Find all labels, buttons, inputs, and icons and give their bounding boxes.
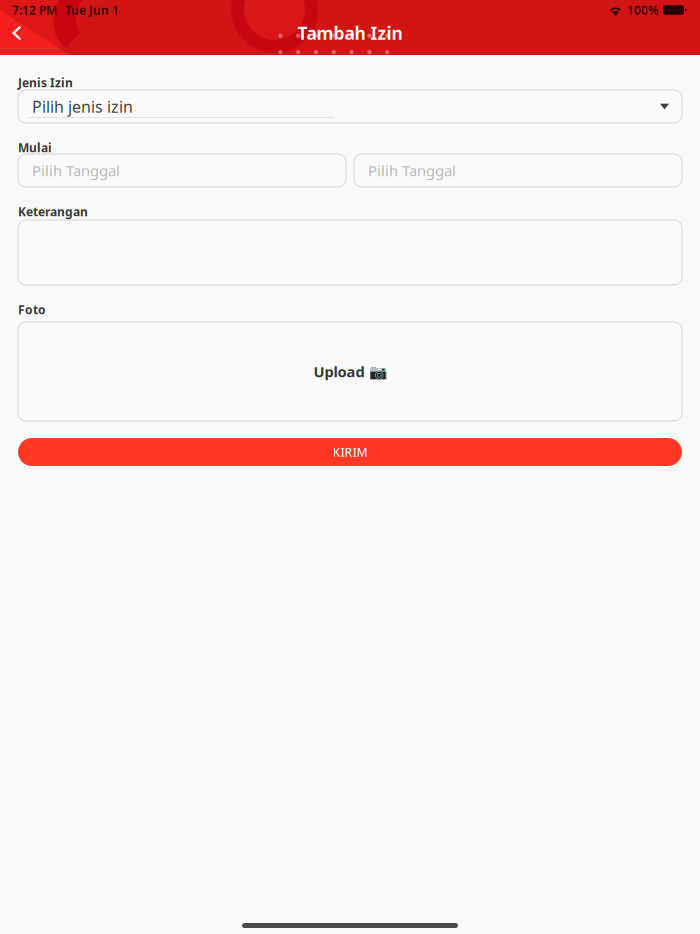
staticText: Tambah Izin <box>297 21 402 44</box>
button[interactable]: Upload 📷 <box>18 322 682 421</box>
staticText: Keterangan <box>18 203 88 219</box>
button[interactable]: Back <box>0 17 34 49</box>
staticText: Pilih Tanggal <box>32 161 120 180</box>
staticText: 7:12 PM <box>12 2 57 18</box>
button[interactable]: Pilih Tanggal <box>354 154 682 187</box>
button[interactable]: Pilih jenis izin <box>18 90 682 123</box>
button[interactable] <box>18 220 682 285</box>
staticText: 100% <box>627 2 659 18</box>
staticText: Pilih jenis izin <box>32 96 133 117</box>
button[interactable]: KIRIM <box>18 438 682 466</box>
staticText: Pilih Tanggal <box>368 161 456 180</box>
button[interactable]: Pilih Tanggal <box>18 154 346 187</box>
staticText: KIRIM <box>332 444 367 460</box>
staticText: Foto <box>18 301 46 317</box>
staticText: Tue Jun 1 <box>65 2 119 18</box>
staticText: Mulai <box>18 139 52 155</box>
staticText: Jenis Izin <box>18 74 73 90</box>
staticText: Upload 📷 <box>313 362 386 381</box>
